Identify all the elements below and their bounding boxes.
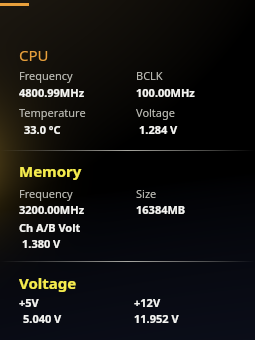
staticText: 5.040 V [23, 311, 62, 326]
staticText: Memory [19, 161, 82, 181]
staticText: 16384MB [136, 202, 186, 217]
button[interactable]: CPU [0, 0, 255, 340]
staticText: CPU [19, 45, 49, 65]
staticText: 100.00MHz [136, 85, 195, 100]
staticText: Frequency [19, 68, 73, 83]
staticText: 1.380 V [22, 236, 61, 251]
staticText: Frequency [19, 186, 73, 201]
staticText: +5V [19, 295, 39, 310]
staticText: 3200.00MHz [19, 202, 85, 217]
staticText: +12V [134, 295, 161, 310]
staticText: Voltage [136, 105, 175, 120]
staticText: Voltage [19, 273, 77, 293]
staticText: Ch A/B Volt [19, 220, 81, 235]
staticText: Size [136, 186, 157, 201]
staticText: 11.952 V [134, 311, 179, 326]
staticText: 33.0 °C [24, 122, 61, 137]
staticText: 1.284 V [139, 122, 178, 137]
staticText: 4800.99MHz [19, 85, 85, 100]
staticText: Temperature [19, 105, 86, 120]
staticText: BCLK [136, 68, 163, 83]
